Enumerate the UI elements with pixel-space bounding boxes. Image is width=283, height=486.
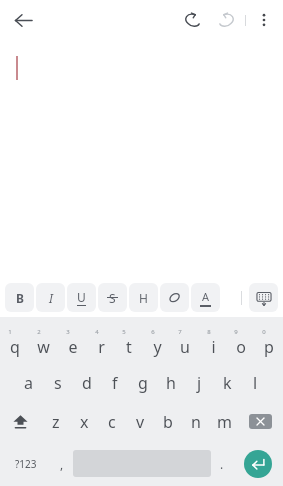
button[interactable]: Redo: [212, 5, 242, 35]
staticText: n: [191, 411, 201, 433]
staticText: p: [264, 336, 274, 358]
button[interactable]: B: [5, 283, 34, 312]
staticText: S: [109, 290, 116, 306]
staticText: .: [220, 456, 224, 472]
staticText: l: [253, 372, 258, 394]
staticText: 5: [122, 328, 126, 336]
staticText: d: [82, 372, 92, 394]
button[interactable]: g: [129, 363, 157, 402]
staticText: j: [197, 372, 202, 394]
staticText: s: [54, 372, 62, 394]
staticText: A: [202, 289, 210, 304]
staticText: U: [77, 289, 86, 305]
staticText: t: [126, 336, 132, 358]
staticText: 1: [8, 328, 12, 336]
button[interactable]: ,: [51, 441, 73, 486]
staticText: o: [236, 336, 246, 358]
staticText: e: [68, 336, 78, 358]
button[interactable]: Back: [6, 3, 40, 37]
staticText: q: [10, 336, 20, 358]
button[interactable]: f: [101, 363, 129, 402]
staticText: I: [49, 290, 53, 306]
button[interactable]: m: [210, 402, 238, 441]
staticText: w: [37, 336, 50, 358]
button[interactable]: 0: [255, 323, 283, 363]
button[interactable]: 8: [199, 323, 227, 363]
staticText: r: [98, 336, 105, 358]
staticText: H: [139, 290, 148, 306]
staticText: v: [136, 411, 145, 433]
button[interactable]: U: [67, 283, 96, 312]
button[interactable]: 3: [58, 323, 87, 363]
staticText: u: [180, 336, 190, 358]
button[interactable]: 9: [227, 323, 255, 363]
button[interactable]: a: [14, 363, 43, 402]
button[interactable]: c: [98, 402, 126, 441]
button[interactable]: [0, 40, 283, 278]
button[interactable]: More options: [249, 5, 279, 35]
button[interactable]: 4: [87, 323, 115, 363]
staticText: ?123: [15, 457, 37, 471]
button[interactable]: v: [126, 402, 154, 441]
button[interactable]: 1: [0, 323, 29, 363]
button[interactable]: Text color: [191, 283, 220, 312]
staticText: 0: [262, 328, 266, 336]
staticText: 9: [234, 328, 238, 336]
staticText: 3: [66, 328, 70, 336]
staticText: i: [211, 336, 216, 358]
button[interactable]: n: [182, 402, 210, 441]
button[interactable]: Hide keyboard: [249, 283, 278, 312]
button[interactable]: Undo: [176, 5, 206, 35]
button[interactable]: 5: [115, 323, 143, 363]
staticText: ,: [60, 456, 64, 472]
staticText: k: [223, 372, 232, 394]
staticText: b: [163, 411, 173, 433]
button[interactable]: Enter: [244, 450, 272, 478]
staticText: m: [217, 411, 232, 433]
button[interactable]: z: [41, 402, 70, 441]
button[interactable]: s: [43, 363, 72, 402]
button[interactable]: 6: [143, 323, 171, 363]
staticText: y: [153, 336, 162, 358]
staticText: a: [24, 372, 33, 394]
staticText: c: [108, 411, 116, 433]
button[interactable]: k: [213, 363, 241, 402]
button[interactable]: H: [129, 283, 158, 312]
button[interactable]: 2: [29, 323, 58, 363]
staticText: 6: [151, 328, 155, 336]
staticText: x: [80, 411, 89, 433]
button[interactable]: d: [72, 363, 101, 402]
button[interactable]: I: [36, 283, 65, 312]
button[interactable]: Shift: [0, 402, 41, 441]
staticText: 4: [95, 328, 99, 336]
button[interactable]: j: [185, 363, 213, 402]
button[interactable]: b: [154, 402, 182, 441]
button[interactable]: x: [70, 402, 98, 441]
button[interactable]: h: [157, 363, 185, 402]
staticText: f: [112, 372, 118, 394]
staticText: g: [138, 372, 148, 394]
staticText: z: [52, 411, 60, 433]
button[interactable]: 7: [171, 323, 199, 363]
button[interactable]: ?123: [0, 441, 51, 486]
button[interactable]: l: [241, 363, 269, 402]
button[interactable]: .: [211, 441, 233, 486]
staticText: h: [166, 372, 176, 394]
button[interactable]: Backspace: [238, 402, 283, 441]
staticText: 7: [178, 328, 182, 336]
staticText: 2: [37, 328, 41, 336]
staticText: 8: [207, 328, 211, 336]
staticText: B: [16, 290, 24, 306]
button[interactable]: Highlight: [160, 283, 189, 312]
button[interactable]: S: [98, 283, 127, 312]
